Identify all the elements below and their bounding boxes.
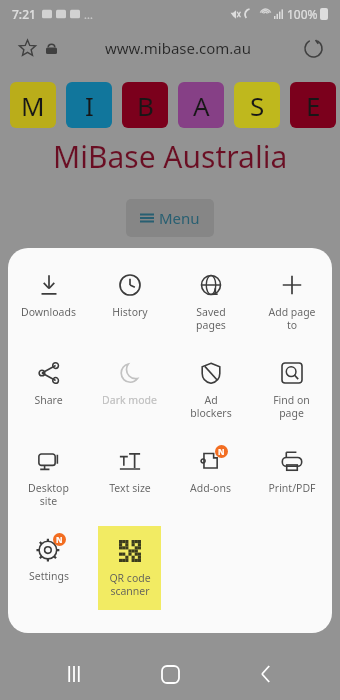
staticText: I (85, 88, 94, 123)
button[interactable]: Recents (52, 652, 96, 696)
button[interactable]: Back (244, 652, 288, 696)
staticText: A (193, 88, 210, 123)
button[interactable]: History (89, 262, 170, 319)
button[interactable]: Downloads (8, 262, 89, 319)
button[interactable]: Share (8, 350, 89, 407)
staticText: Desktop site (28, 481, 69, 508)
button[interactable]: Bookmark (14, 35, 40, 61)
staticText: www.mibase.com.au (105, 38, 251, 58)
staticText: Dark mode (102, 393, 157, 407)
staticText: N (56, 534, 63, 545)
staticText: Share (34, 393, 63, 407)
staticText: 7:21 (12, 6, 36, 22)
staticText: 100% (287, 6, 318, 22)
button[interactable]: N (8, 526, 89, 583)
button[interactable]: Text size (89, 438, 170, 495)
staticText: Print/PDF (268, 481, 316, 495)
staticText: QR code scanner (109, 571, 151, 598)
staticText: E (306, 88, 321, 123)
button[interactable]: Ad blockers (170, 350, 251, 420)
staticText: Add-ons (190, 481, 231, 495)
button[interactable]: Home (148, 652, 192, 696)
staticText: Add page to (268, 305, 316, 332)
staticText: M (21, 88, 45, 123)
staticText: Ad blockers (190, 393, 232, 420)
staticText: Text size (109, 481, 151, 495)
staticText: History (112, 305, 148, 319)
staticText: Downloads (21, 305, 76, 319)
staticText: B (137, 88, 154, 123)
staticText: Saved pages (196, 305, 226, 332)
staticText: N (218, 446, 225, 457)
button[interactable]: Saved pages (170, 262, 251, 332)
button[interactable]: Desktop site (8, 438, 89, 508)
staticText: S (250, 88, 265, 123)
staticText: Settings (29, 569, 69, 583)
button[interactable]: Print/PDF (251, 438, 332, 495)
staticText: Menu (159, 208, 200, 228)
staticText: Find on page (273, 393, 310, 420)
button[interactable]: QR code scanner (98, 526, 161, 610)
button[interactable]: Dark mode (89, 350, 170, 407)
button[interactable]: N (170, 438, 251, 495)
button[interactable]: Reload (300, 35, 326, 61)
button[interactable]: Find on page (251, 350, 332, 420)
staticText: ... (84, 7, 93, 22)
button[interactable]: Add page to (251, 262, 332, 332)
staticText: MiBase Australia (53, 136, 288, 177)
button[interactable]: Menu (126, 199, 214, 237)
